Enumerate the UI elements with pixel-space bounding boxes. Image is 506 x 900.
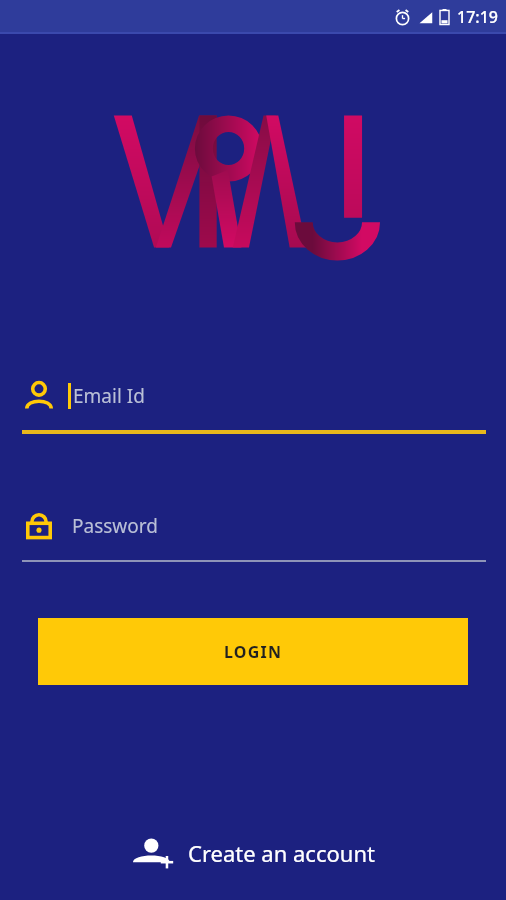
staticText: Create an account — [188, 838, 375, 868]
button[interactable]: LOGIN — [38, 618, 468, 685]
staticText: 17:19 — [457, 6, 498, 28]
button[interactable]: Password — [20, 500, 486, 552]
button[interactable]: Email Id — [20, 370, 486, 422]
staticText: Password — [72, 513, 158, 539]
staticText: LOGIN — [224, 641, 283, 663]
button[interactable]: Create an account — [112, 822, 395, 884]
staticText: Email Id — [73, 383, 145, 409]
